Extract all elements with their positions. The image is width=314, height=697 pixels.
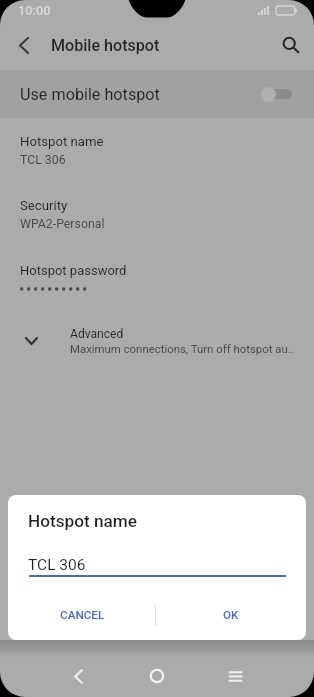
button[interactable]: Security xyxy=(0,185,314,249)
staticText: CANCEL xyxy=(60,608,105,622)
button[interactable]: Home xyxy=(134,653,180,697)
staticText: Security xyxy=(20,198,68,213)
staticText: Hotspot name xyxy=(28,511,137,531)
staticText: Use mobile hotspot xyxy=(20,85,160,104)
staticText: Mobile hotspot xyxy=(51,36,160,55)
staticText: TCL 306 xyxy=(20,153,66,167)
staticText: Maximum connections, Turn off hotspot au… xyxy=(70,342,294,355)
button[interactable]: Recent apps xyxy=(212,653,258,697)
staticText: Advanced xyxy=(70,327,124,341)
button[interactable]: Use mobile hotspot xyxy=(0,70,314,118)
button[interactable]: Hotspot name xyxy=(0,121,314,185)
staticText: WPA2-Personal xyxy=(20,217,105,231)
staticText: Hotspot password xyxy=(20,263,127,278)
button[interactable]: CANCEL xyxy=(8,598,156,632)
button[interactable]: Search xyxy=(273,27,309,63)
button[interactable]: Hotspot password xyxy=(0,249,314,313)
staticText: TCL 306 xyxy=(28,556,86,574)
staticText: OK xyxy=(223,608,239,622)
button[interactable]: Navigate up xyxy=(6,27,42,63)
staticText: Hotspot name xyxy=(20,134,104,149)
button[interactable]: Advanced xyxy=(0,318,314,364)
button[interactable]: Back xyxy=(55,653,101,697)
button[interactable]: OK xyxy=(156,598,305,632)
staticText: 10:00 xyxy=(18,3,51,18)
